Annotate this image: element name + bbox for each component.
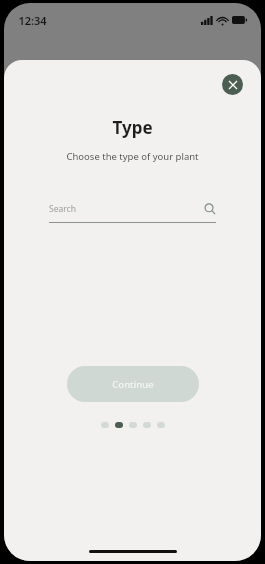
button[interactable]: Close: [222, 74, 243, 95]
staticText: 12:34: [18, 13, 47, 28]
staticText: Type: [112, 116, 153, 139]
button[interactable]: Continue: [67, 366, 199, 402]
staticText: Choose the type of your plant: [66, 150, 199, 163]
staticText: Search: [49, 203, 76, 215]
button[interactable]: Search: [49, 199, 216, 223]
staticText: Continue: [112, 378, 154, 391]
